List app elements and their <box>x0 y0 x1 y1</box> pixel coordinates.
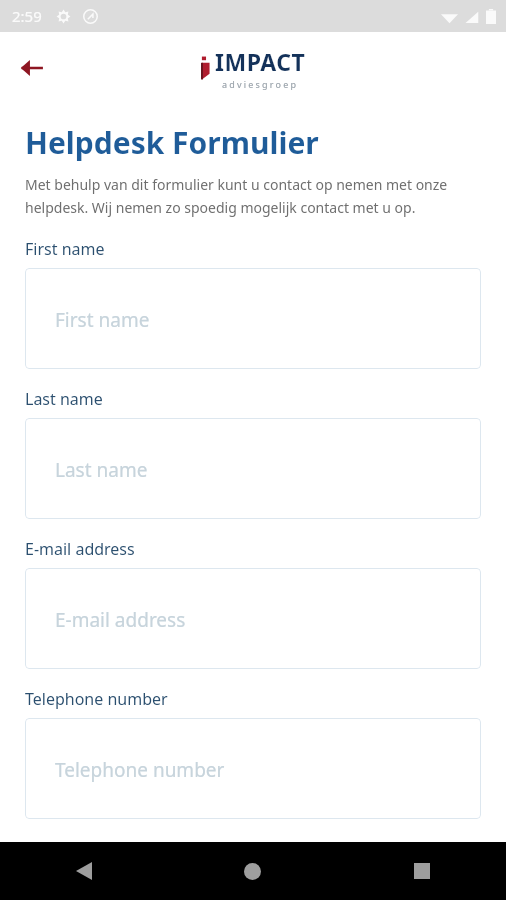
staticText: 2:59 <box>12 6 42 26</box>
staticText: E-mail address <box>25 538 135 560</box>
button[interactable]: First name <box>25 268 481 369</box>
button[interactable]: Back <box>0 842 168 900</box>
staticText: Met behulp van dit formulier kunt u cont… <box>25 175 448 194</box>
staticText: Last name <box>25 388 103 410</box>
staticText: E-mail address <box>55 607 186 633</box>
button[interactable]: E-mail address <box>25 568 481 669</box>
staticText: First name <box>25 238 105 260</box>
staticText: helpdesk. Wij nemen zo spoedig mogelijk … <box>25 198 416 217</box>
button[interactable]: Last name <box>25 418 481 519</box>
button[interactable]: Recent apps <box>337 842 506 900</box>
staticText: adviesgroep <box>222 78 299 90</box>
staticText: Telephone number <box>25 688 168 710</box>
staticText: IMPACT <box>215 46 306 77</box>
staticText: Helpdesk Formulier <box>25 122 319 163</box>
staticText: First name <box>55 307 150 333</box>
staticText: Last name <box>55 457 148 483</box>
staticText: Telephone number <box>55 757 225 783</box>
button[interactable]: Home <box>168 842 337 900</box>
button[interactable]: Back <box>8 44 56 92</box>
button[interactable]: Telephone number <box>25 718 481 819</box>
